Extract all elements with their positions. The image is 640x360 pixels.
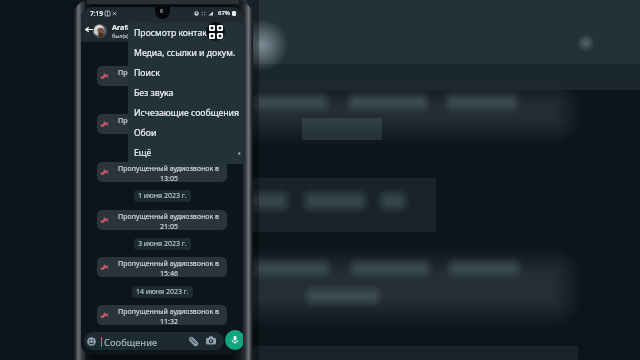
staticText: 14 июня 2023 г. — [136, 287, 189, 297]
button[interactable]: Screen recorder widget — [206, 22, 225, 41]
button[interactable]: Пропущенный аудиозвонок в — [97, 257, 227, 277]
button[interactable]: Без звука — [128, 83, 243, 103]
staticText: 67% — [218, 9, 230, 17]
button[interactable]: Пропущенный аудиозвонок в — [97, 66, 227, 86]
staticText: Исчезающие сообщения — [134, 107, 240, 119]
staticText: 30 мая 2023 г. — [138, 143, 186, 153]
staticText: Arafat — [112, 22, 135, 32]
staticText: 3 июня 2023 г. — [138, 239, 187, 249]
staticText: 15:46 — [160, 269, 178, 277]
button[interactable]: Просмотр контакта — [128, 23, 243, 43]
staticText: Пропущенный аудиозвонок в — [118, 68, 219, 78]
button[interactable]: Пропущенный аудиозвонок в — [97, 210, 227, 230]
staticText: Обои — [134, 127, 157, 139]
staticText: 11:32 — [160, 317, 178, 325]
staticText: Просмотр контакта — [134, 27, 216, 39]
staticText: Пропущенный аудиозвонок в — [118, 259, 219, 269]
staticText: Медиа, ссылки и докум. — [134, 47, 236, 59]
button[interactable]: Back — [83, 23, 95, 35]
button[interactable]: Обои — [128, 123, 243, 143]
staticText: 21:05 — [160, 222, 178, 230]
button[interactable]: Contact photo — [93, 24, 107, 38]
button[interactable]: Пропущенный аудиозвонок в — [97, 305, 227, 325]
button[interactable]: Ещё — [128, 143, 243, 163]
staticText: 1 июня 2023 г. — [138, 191, 187, 201]
staticText: Ещё — [134, 147, 152, 159]
button[interactable]: Сообщение — [84, 332, 224, 350]
staticText: Поиск — [134, 67, 160, 79]
button[interactable]: Поиск — [128, 63, 243, 83]
staticText: Пропущенный аудиозвонок в — [118, 164, 219, 174]
button[interactable]: Record voice message — [225, 330, 243, 350]
staticText: 7:19 — [90, 9, 103, 18]
staticText: Пропущенный аудиозвонок в — [118, 212, 219, 222]
staticText: 13:05 — [160, 174, 178, 182]
staticText: Без звука — [134, 87, 174, 99]
button[interactable]: Медиа, ссылки и докум. — [128, 43, 243, 63]
button[interactable]: Пропущенный аудиозвонок в — [97, 162, 227, 182]
button[interactable]: Пропущенный аудиозвонок в — [97, 114, 227, 134]
staticText: 25 мая 2023 г. — [138, 95, 186, 105]
staticText: Пропущенный аудиозвонок в — [118, 307, 219, 317]
staticText: Пропущенный аудиозвонок в — [118, 116, 219, 126]
staticText: Сообщение — [104, 336, 158, 349]
button[interactable]: Исчезающие сообщения — [128, 103, 243, 123]
staticText: был(а) ч… — [112, 32, 138, 39]
